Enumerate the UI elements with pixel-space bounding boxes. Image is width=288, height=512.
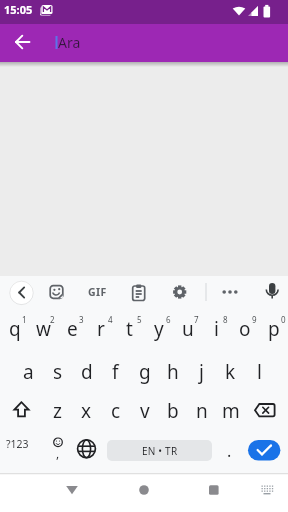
button[interactable]: f: [101, 353, 130, 391]
button[interactable]: u: [173, 309, 202, 349]
button[interactable]: [46, 282, 67, 303]
button[interactable]: [52, 476, 92, 506]
staticText: a: [23, 359, 34, 385]
staticText: d: [81, 359, 93, 385]
staticText: m: [222, 398, 240, 424]
staticText: w: [36, 316, 51, 342]
button[interactable]: h: [158, 353, 187, 391]
button[interactable]: [0, 390, 43, 429]
staticText: u: [182, 316, 194, 342]
button[interactable]: [252, 476, 282, 506]
button[interactable]: [86, 282, 108, 304]
staticText: f: [112, 359, 119, 385]
staticText: i: [214, 316, 219, 342]
staticText: x: [81, 398, 92, 424]
staticText: q: [9, 316, 21, 342]
staticText: 0: [281, 314, 286, 325]
button[interactable]: q: [0, 309, 29, 349]
button[interactable]: y: [144, 309, 173, 349]
button[interactable]: j: [187, 353, 216, 391]
staticText: r: [97, 316, 105, 342]
button[interactable]: [245, 390, 288, 429]
staticText: ?123: [6, 437, 29, 451]
staticText: 4: [108, 314, 113, 325]
button[interactable]: [194, 476, 234, 506]
staticText: y: [154, 316, 164, 342]
staticText: l: [257, 359, 262, 385]
staticText: v: [140, 398, 150, 424]
staticText: 6: [166, 314, 171, 325]
staticText: c: [111, 398, 121, 424]
button[interactable]: [72, 429, 101, 467]
button[interactable]: [219, 282, 241, 304]
staticText: b: [167, 398, 179, 424]
staticText: e: [67, 316, 78, 342]
button[interactable]: m: [216, 392, 245, 430]
button[interactable]: [216, 429, 241, 467]
button[interactable]: [0, 429, 33, 467]
button[interactable]: r: [86, 309, 115, 349]
staticText: s: [53, 359, 63, 385]
staticText: 7: [194, 314, 199, 325]
staticText: h: [167, 359, 179, 385]
button[interactable]: l: [245, 353, 274, 391]
button[interactable]: c: [101, 392, 130, 430]
staticText: t: [126, 316, 133, 342]
button[interactable]: z: [43, 392, 72, 430]
staticText: 2: [50, 314, 55, 325]
button[interactable]: p: [259, 309, 288, 349]
button[interactable]: e: [58, 309, 87, 349]
button[interactable]: x: [72, 392, 101, 430]
staticText: o: [239, 316, 251, 342]
button[interactable]: [169, 282, 190, 303]
staticText: n: [196, 398, 208, 424]
staticText: 9: [252, 314, 257, 325]
button[interactable]: i: [202, 309, 231, 349]
staticText: 15:05: [4, 2, 33, 17]
button[interactable]: o: [230, 309, 259, 349]
button[interactable]: [128, 282, 149, 303]
button[interactable]: n: [187, 392, 216, 430]
staticText: 3: [79, 314, 84, 325]
staticText: 8: [223, 314, 228, 325]
staticText: .: [227, 440, 232, 462]
button[interactable]: [246, 436, 283, 463]
staticText: z: [53, 398, 62, 424]
staticText: g: [139, 359, 151, 385]
button[interactable]: a: [14, 353, 43, 391]
staticText: ,: [56, 445, 60, 461]
button[interactable]: v: [130, 392, 159, 430]
button[interactable]: t: [115, 309, 144, 349]
staticText: k: [225, 359, 236, 385]
staticText: p: [268, 316, 280, 342]
staticText: Ara: [58, 33, 81, 52]
button[interactable]: [261, 282, 283, 304]
button[interactable]: s: [43, 353, 72, 391]
staticText: EN • TR: [142, 444, 178, 458]
staticText: j: [199, 359, 204, 385]
button[interactable]: EN • TR: [107, 440, 212, 461]
button[interactable]: [124, 476, 164, 506]
button[interactable]: b: [158, 392, 187, 430]
button[interactable]: g: [130, 353, 159, 391]
button[interactable]: [10, 281, 33, 304]
button[interactable]: [6, 27, 40, 61]
button[interactable]: k: [216, 353, 245, 391]
button[interactable]: [43, 429, 72, 467]
staticText: 5: [137, 314, 142, 325]
staticText: 1: [22, 314, 27, 325]
staticText: GIF: [88, 285, 107, 299]
button[interactable]: d: [72, 353, 101, 391]
button[interactable]: w: [29, 309, 58, 349]
